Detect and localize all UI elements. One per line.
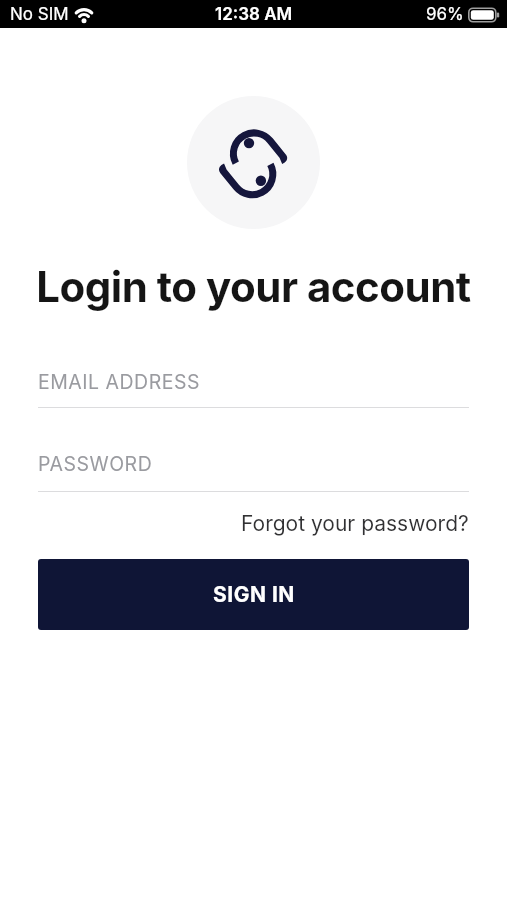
staticText: EMAIL ADDRESS <box>38 370 200 394</box>
staticText: Forgot your password? <box>241 511 469 536</box>
button[interactable]: SIGN IN <box>38 559 469 630</box>
staticText: No SIM <box>10 4 69 25</box>
staticText: PASSWORD <box>38 452 153 476</box>
staticText: 96% <box>426 4 464 25</box>
staticText: Login to your account <box>36 261 471 312</box>
button[interactable]: PASSWORD <box>38 452 469 492</box>
staticText: 12:38 AM <box>215 4 293 25</box>
staticText: SIGN IN <box>213 582 295 607</box>
button[interactable]: Forgot your password? <box>241 511 469 536</box>
button[interactable]: EMAIL ADDRESS <box>38 370 469 408</box>
